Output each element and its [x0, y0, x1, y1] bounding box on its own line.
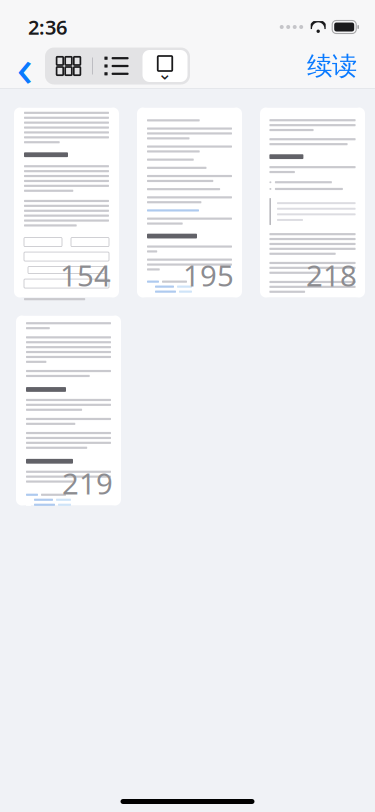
button[interactable]: Grid view — [45, 47, 92, 84]
button[interactable]: Bookmarks — [140, 47, 190, 84]
button[interactable]: Page 219 — [13, 312, 124, 508]
button[interactable]: List view — [93, 47, 140, 84]
staticText: 218 — [306, 255, 357, 294]
staticText: 续读 — [307, 50, 357, 81]
staticText: 219 — [62, 463, 113, 502]
staticText: 195 — [183, 255, 234, 294]
button[interactable]: Back — [5, 44, 45, 88]
staticText: ⌄ — [157, 64, 172, 83]
button[interactable]: Page 154 — [11, 104, 122, 300]
button[interactable]: 续读 — [302, 44, 362, 88]
staticText: 154 — [60, 255, 111, 294]
staticText: 2:36 — [28, 14, 67, 40]
staticText: ‹ — [16, 31, 33, 101]
button[interactable]: Page 218 — [257, 104, 368, 300]
button[interactable]: Page 195 — [134, 104, 245, 300]
